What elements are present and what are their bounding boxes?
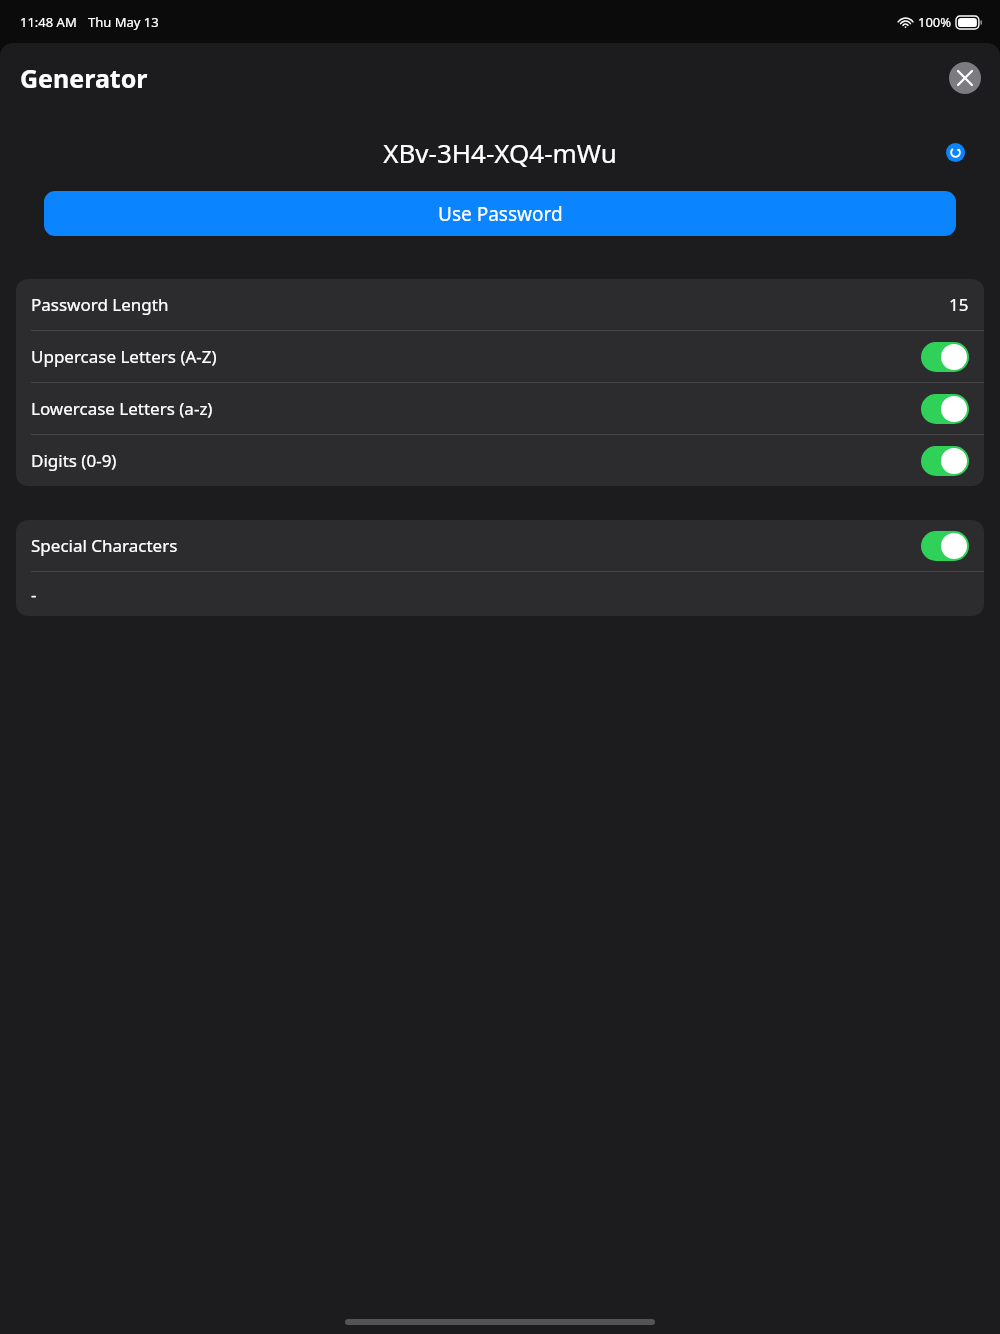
staticText: 100%	[918, 13, 952, 31]
button[interactable]: Close	[949, 62, 981, 94]
staticText: 15	[949, 293, 969, 316]
staticText: Generator	[20, 61, 148, 95]
button[interactable]: Toggle on	[921, 446, 969, 476]
button[interactable]: Regenerate password	[938, 135, 972, 169]
button[interactable]: Uppercase Letters (A-Z)	[16, 331, 984, 382]
staticText: Special Characters	[31, 534, 178, 557]
staticText: 11:48 AM	[20, 13, 77, 31]
staticText: Password Length	[31, 293, 169, 316]
button[interactable]: Lowercase Letters (a-z)	[16, 383, 984, 434]
staticText: Lowercase Letters (a-z)	[31, 397, 213, 420]
button[interactable]: Special Characters	[16, 520, 984, 571]
button[interactable]: Toggle on	[921, 394, 969, 424]
button[interactable]: Toggle on	[921, 531, 969, 561]
button[interactable]: Use Password	[44, 191, 956, 236]
button[interactable]: Toggle on	[921, 342, 969, 372]
staticText: Use Password	[438, 201, 563, 227]
staticText: -	[31, 583, 37, 606]
staticText: Thu May 13	[88, 13, 159, 31]
button[interactable]: Password Length	[16, 279, 984, 330]
staticText: XBv-3H4-XQ4-mWu	[383, 135, 617, 170]
button[interactable]: Digits (0-9)	[16, 435, 984, 486]
staticText: Uppercase Letters (A-Z)	[31, 345, 217, 368]
staticText: Digits (0-9)	[31, 449, 117, 472]
